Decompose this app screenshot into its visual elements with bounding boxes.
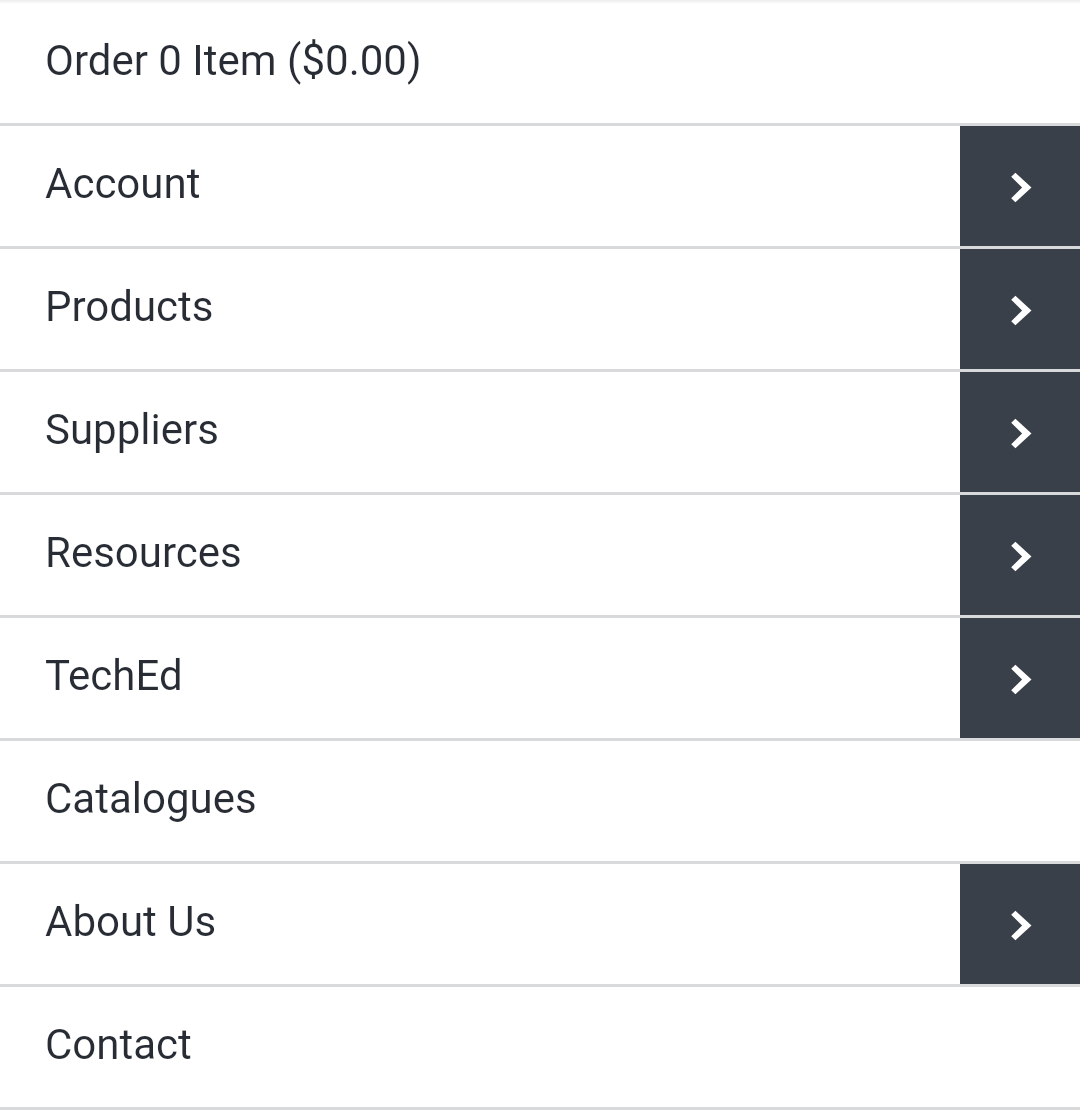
button[interactable]: Open Resources	[0, 495, 1080, 618]
button[interactable]: Open About Us	[0, 864, 1080, 987]
staticText: Contact	[45, 1020, 192, 1069]
button[interactable]: Open Account	[0, 126, 1080, 249]
button[interactable]: Contact	[0, 987, 1080, 1110]
button[interactable]: Open Suppliers	[960, 372, 1080, 492]
staticText: About Us	[45, 897, 217, 946]
button[interactable]: Order 0 Item ($0.00)	[0, 3, 1080, 126]
staticText: TechEd	[45, 651, 183, 700]
button[interactable]: Open TechEd	[0, 618, 1080, 741]
button[interactable]: Open About Us	[960, 864, 1080, 984]
button[interactable]: Open Resources	[960, 495, 1080, 615]
staticText: Order 0 Item ($0.00)	[45, 36, 422, 85]
button[interactable]: Open Account	[960, 126, 1080, 246]
staticText: Products	[45, 282, 214, 331]
button[interactable]: Open Suppliers	[0, 372, 1080, 495]
button[interactable]: Catalogues	[0, 741, 1080, 864]
staticText: Suppliers	[45, 405, 219, 454]
button[interactable]: Open TechEd	[960, 618, 1080, 738]
staticText: Resources	[45, 528, 242, 577]
button[interactable]: Open Products	[0, 249, 1080, 372]
staticText: Account	[45, 159, 201, 208]
button[interactable]: Open Products	[960, 249, 1080, 369]
staticText: Catalogues	[45, 774, 257, 823]
